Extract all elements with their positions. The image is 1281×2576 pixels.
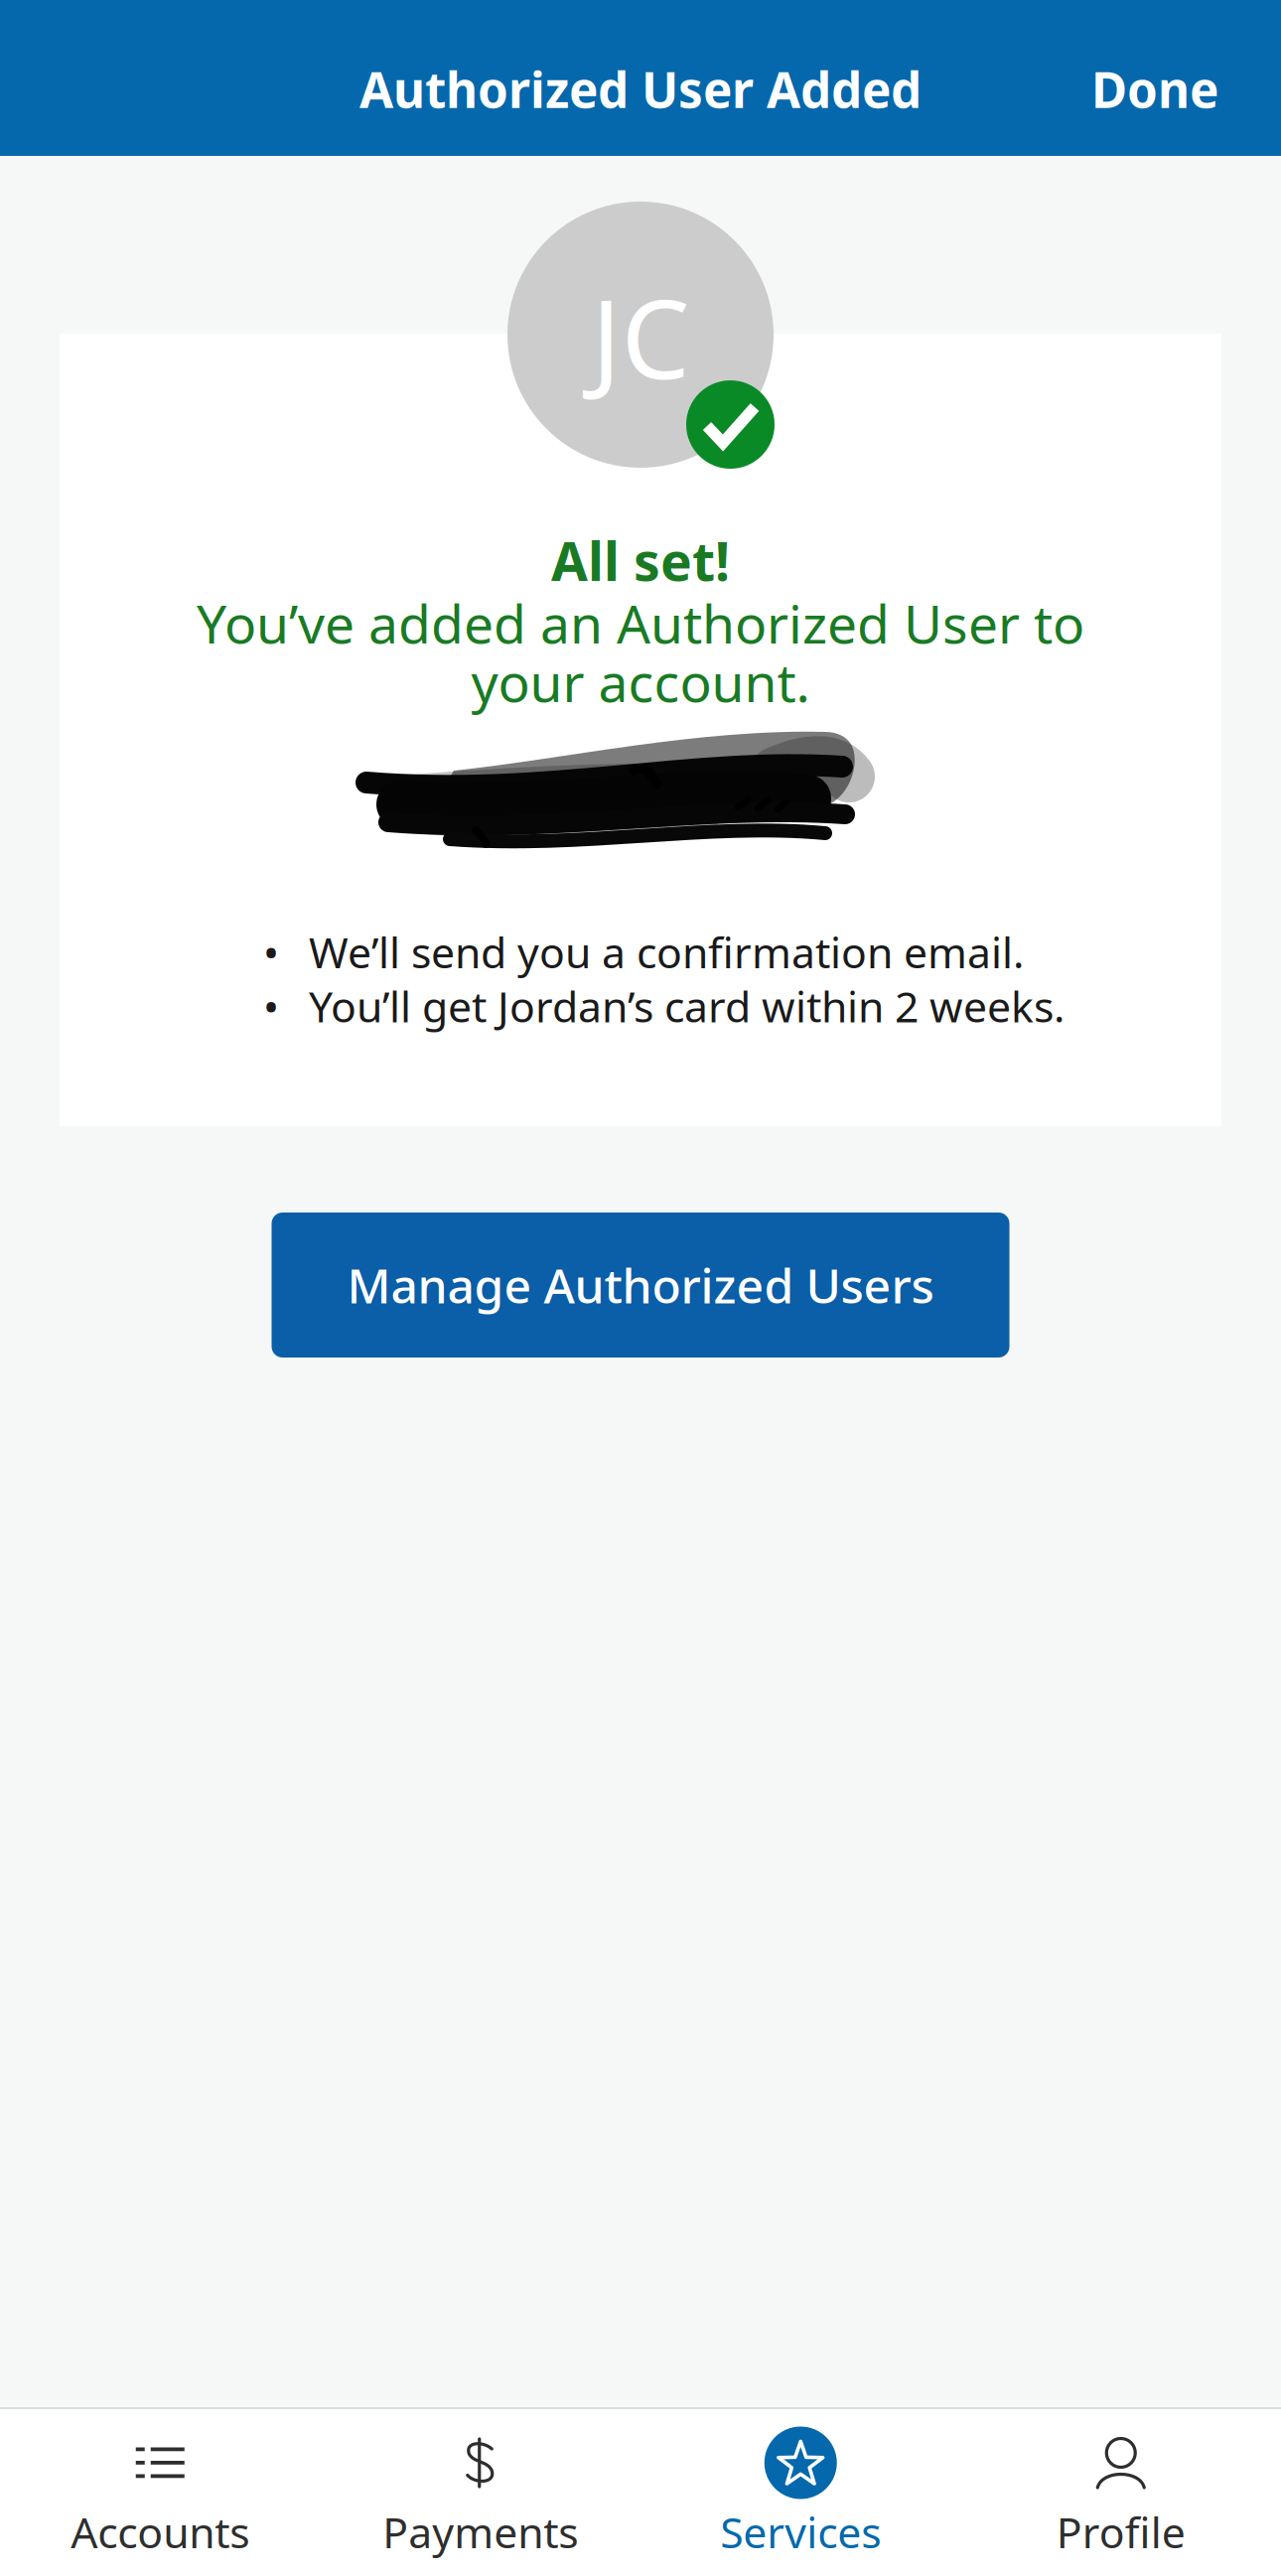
button[interactable]: Manage Authorized Users xyxy=(272,1213,1009,1358)
staticText: Profile xyxy=(1056,2504,1185,2560)
staticText: Services xyxy=(720,2504,881,2560)
button[interactable]: Accounts xyxy=(0,2409,320,2576)
staticText: Manage Authorized Users xyxy=(347,1253,934,1317)
staticText: You’ve added an Authorized User to xyxy=(197,588,1084,658)
staticText: Done xyxy=(1091,56,1218,121)
staticText: JC xyxy=(591,265,690,409)
staticText: Accounts xyxy=(71,2504,249,2560)
button[interactable]: Payments xyxy=(320,2409,640,2576)
button[interactable]: Profile xyxy=(961,2409,1281,2576)
button[interactable]: Done xyxy=(1066,32,1244,145)
staticText: You’ll get Jordan’s card within 2 weeks. xyxy=(309,978,1065,1034)
button[interactable]: Services xyxy=(640,2409,961,2576)
staticText: Payments xyxy=(383,2504,578,2560)
staticText: We’ll send you a confirmation email. xyxy=(309,924,1024,980)
staticText: • xyxy=(263,924,279,980)
staticText: Authorized User Added xyxy=(359,56,922,121)
staticText: All set! xyxy=(551,525,730,596)
staticText: • xyxy=(263,978,279,1034)
staticText: your account. xyxy=(471,646,810,717)
